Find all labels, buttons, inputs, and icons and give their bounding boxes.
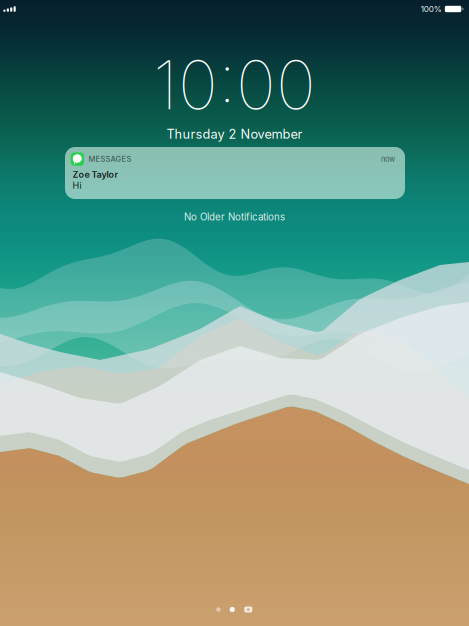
staticText: No Older Notifications	[184, 211, 285, 223]
staticText: MESSAGES	[88, 154, 131, 163]
button[interactable]: Camera	[244, 606, 253, 613]
button[interactable]: MESSAGES	[65, 147, 405, 199]
staticText: now	[381, 154, 395, 163]
staticText: Zoe Taylor	[72, 169, 118, 180]
staticText: Thursday 2 November	[166, 126, 302, 142]
staticText: 10:00	[153, 44, 316, 125]
staticText: 100%	[421, 4, 442, 14]
staticText: Hi	[72, 180, 81, 191]
